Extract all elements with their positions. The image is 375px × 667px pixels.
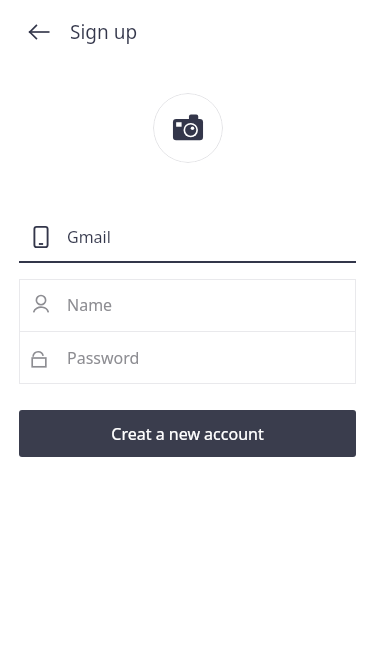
button[interactable]: Add profile photo — [153, 93, 223, 163]
button[interactable]: Back — [22, 15, 56, 49]
staticText: Sign up — [70, 19, 138, 45]
staticText: Creat a new account — [111, 423, 264, 445]
staticText: Password — [67, 347, 140, 369]
button[interactable]: Gmail — [19, 218, 356, 263]
button[interactable]: Name — [19, 279, 356, 331]
staticText: Gmail — [67, 226, 111, 248]
button[interactable]: Password — [19, 332, 356, 384]
staticText: Name — [67, 294, 113, 316]
button[interactable]: Creat a new account — [19, 410, 356, 457]
